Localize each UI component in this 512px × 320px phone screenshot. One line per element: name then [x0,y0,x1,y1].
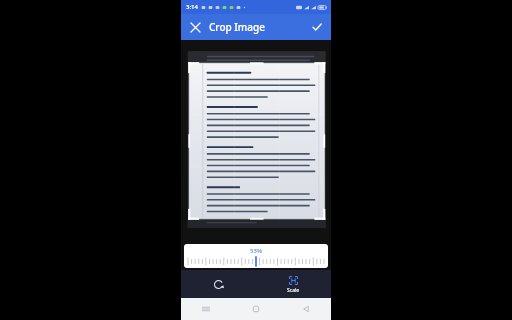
button[interactable]: Rotate [181,270,256,298]
button[interactable]: Recent apps [181,298,231,320]
button[interactable]: Home [231,298,281,320]
staticText: 53% [250,247,262,255]
button[interactable]: Scale slider 53 percent [184,244,328,268]
button[interactable]: Confirm crop [306,16,328,38]
staticText: 3:14 [186,3,198,11]
staticText: Crop Image [209,20,265,34]
button[interactable]: Back [281,298,331,320]
button[interactable]: Close [184,16,206,38]
button[interactable]: Scale [256,270,331,298]
staticText: Scale [287,287,300,294]
